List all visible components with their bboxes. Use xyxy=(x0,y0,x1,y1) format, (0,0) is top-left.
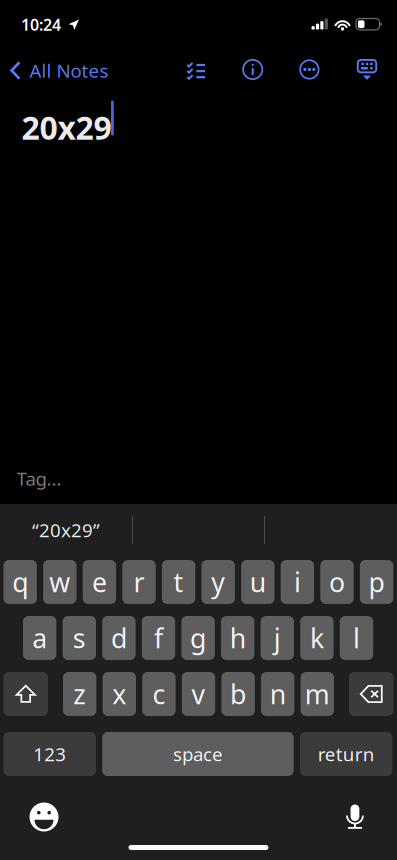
staticText: All Notes xyxy=(29,58,108,83)
button[interactable]: All Notes xyxy=(0,51,110,90)
button[interactable]: Hide Keyboard xyxy=(347,47,387,91)
staticText: 20x29 xyxy=(21,106,111,148)
button[interactable]: w xyxy=(43,560,76,604)
button[interactable]: 123 xyxy=(3,732,96,776)
button[interactable]: j xyxy=(261,616,294,660)
button[interactable]: t xyxy=(162,560,195,604)
staticText: j xyxy=(274,620,281,656)
staticText: return xyxy=(318,742,375,766)
staticText: v xyxy=(191,676,205,712)
button[interactable]: q xyxy=(3,560,37,604)
button[interactable]: k xyxy=(300,616,334,660)
button[interactable]: z xyxy=(63,672,96,716)
button[interactable]: p xyxy=(360,560,393,604)
button[interactable]: space xyxy=(102,732,294,776)
staticText: y xyxy=(211,564,225,600)
staticText: i xyxy=(294,564,301,600)
button[interactable]: More xyxy=(289,47,329,91)
button[interactable]: r xyxy=(122,560,156,604)
button[interactable]: c xyxy=(142,672,176,716)
staticText: q xyxy=(12,564,28,600)
button[interactable]: y xyxy=(201,560,235,604)
staticText: s xyxy=(73,620,86,656)
staticText: x xyxy=(112,676,126,712)
button[interactable]: n xyxy=(261,672,294,716)
button[interactable]: return xyxy=(300,732,392,776)
staticText: w xyxy=(49,564,70,600)
button[interactable]: e xyxy=(83,560,116,604)
staticText: t xyxy=(174,564,184,600)
button[interactable]: v xyxy=(182,672,215,716)
staticText: l xyxy=(353,620,360,656)
staticText: 10:24 xyxy=(21,14,61,35)
button[interactable]: g xyxy=(181,616,215,660)
button[interactable]: “20x29” xyxy=(0,504,132,556)
button[interactable]: Delete xyxy=(349,672,393,716)
button[interactable]: h xyxy=(221,616,254,660)
button[interactable]: s xyxy=(63,616,96,660)
button[interactable]: u xyxy=(241,560,274,604)
staticText: “20x29” xyxy=(32,518,100,542)
staticText: space xyxy=(173,742,223,766)
staticText: Tag... xyxy=(16,466,61,491)
button[interactable]: i xyxy=(281,560,314,604)
button[interactable]: Shift xyxy=(3,672,48,716)
staticText: k xyxy=(310,620,324,656)
button[interactable]: d xyxy=(102,616,136,660)
staticText: r xyxy=(133,564,144,600)
staticText: m xyxy=(305,676,330,712)
staticText: u xyxy=(250,564,266,600)
button[interactable]: l xyxy=(340,616,373,660)
staticText: b xyxy=(230,676,246,712)
staticText: p xyxy=(369,564,385,600)
button[interactable]: Emoji Keyboard xyxy=(22,795,66,839)
staticText: n xyxy=(270,676,286,712)
staticText: z xyxy=(73,676,86,712)
staticText: h xyxy=(230,620,246,656)
staticText: g xyxy=(190,620,206,656)
staticText: 123 xyxy=(33,742,66,766)
button[interactable]: Checklist xyxy=(176,47,216,91)
staticText: f xyxy=(154,620,163,656)
button[interactable]: m xyxy=(301,672,334,716)
staticText: c xyxy=(152,676,165,712)
button[interactable]: Note Information xyxy=(233,47,273,91)
button[interactable]: a xyxy=(23,616,56,660)
staticText: e xyxy=(92,564,107,600)
button[interactable]: b xyxy=(221,672,255,716)
staticText: a xyxy=(32,620,47,656)
button[interactable]: Dictation xyxy=(333,795,377,839)
button[interactable]: f xyxy=(142,616,175,660)
staticText: d xyxy=(111,620,127,656)
button[interactable]: x xyxy=(103,672,136,716)
staticText: o xyxy=(329,564,345,600)
button[interactable]: o xyxy=(320,560,354,604)
